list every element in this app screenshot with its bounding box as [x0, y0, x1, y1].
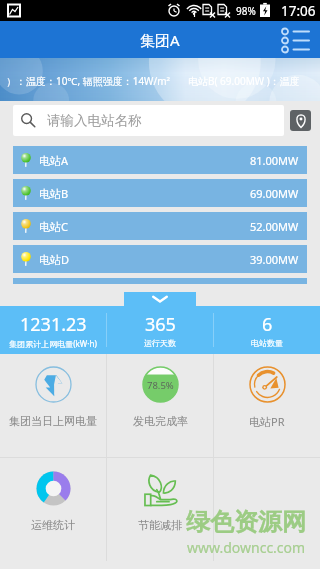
button[interactable]: 运维统计 [0, 458, 106, 561]
staticText: 集团累计上网电量(kW·h) [9, 338, 97, 349]
button[interactable]: 请输入电站名称 [13, 105, 284, 136]
staticText: 绿色资源网 [186, 507, 306, 537]
button[interactable]: Expand list [124, 292, 196, 306]
staticText: 电站PR [249, 414, 285, 429]
staticText: 电站B [39, 186, 69, 201]
staticText: 98% [236, 4, 256, 18]
staticText: 运维统计 [31, 518, 75, 532]
staticText: 17:06 [281, 2, 316, 20]
button[interactable]: 365 [107, 306, 213, 354]
staticText: 集团A [140, 30, 180, 50]
button[interactable]: 节能减排 [107, 458, 213, 561]
staticText: 电站C [39, 219, 68, 234]
staticText: 电站B( 69.00MW )：温度 [188, 74, 300, 88]
staticText: 节能减排 [138, 518, 182, 532]
staticText: 52.00MW [250, 219, 299, 234]
staticText: 电站A [39, 153, 69, 168]
staticText: 69.00MW [250, 186, 299, 201]
button[interactable]: 电站PR [214, 354, 320, 457]
staticText: 1231.23 [20, 312, 87, 337]
staticText: 发电完成率 [133, 414, 188, 428]
staticText: 运行天数 [144, 338, 176, 348]
staticText: 电站数量 [251, 338, 283, 348]
button[interactable]: 电站D [13, 245, 307, 273]
staticText: 78.5% [147, 379, 174, 392]
button[interactable]: 集团当日上网电量 [0, 354, 106, 457]
staticText: 请输入电站名称 [47, 112, 142, 129]
button[interactable]: 电站B [13, 179, 307, 207]
staticText: 电站D [39, 252, 70, 267]
button[interactable]: 1231.23 [0, 306, 106, 354]
staticText: 81.00MW [250, 153, 299, 168]
button[interactable]: 6 [214, 306, 320, 354]
button[interactable]: Station list [276, 23, 314, 57]
button[interactable]: 78.5% [107, 354, 213, 457]
staticText: 39.00MW [250, 252, 299, 267]
button[interactable]: 电站A [13, 146, 307, 174]
button[interactable]: Map view [290, 110, 311, 131]
button[interactable]: 电站C [13, 212, 307, 240]
staticText: ）：温度：10℃, 辐照强度：14W/m² [6, 74, 170, 88]
staticText: 集团当日上网电量 [9, 414, 97, 428]
staticText: 6 [262, 312, 273, 337]
staticText: www.downcc.com [187, 538, 306, 557]
staticText: 365 [145, 312, 176, 337]
